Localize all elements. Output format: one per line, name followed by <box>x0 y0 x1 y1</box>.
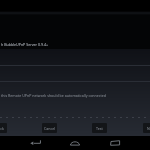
button[interactable]: Recent apps <box>105 136 125 150</box>
staticText: Next <box>147 126 150 131</box>
staticText: Cancel <box>44 126 56 131</box>
button[interactable]: Home <box>65 136 85 150</box>
staticText: Test <box>96 126 103 131</box>
staticText: this Remote UPnP network should be autom… <box>1 93 107 98</box>
button[interactable]: Cancel <box>42 123 57 133</box>
button[interactable]: Back <box>0 123 7 133</box>
staticText: Back <box>0 126 4 131</box>
button[interactable]: Next <box>143 123 150 133</box>
button[interactable]: Back <box>25 136 45 150</box>
staticText: h BubbleUPnP Server 0.9.4+ <box>1 42 49 47</box>
button[interactable]: Test <box>92 123 107 133</box>
